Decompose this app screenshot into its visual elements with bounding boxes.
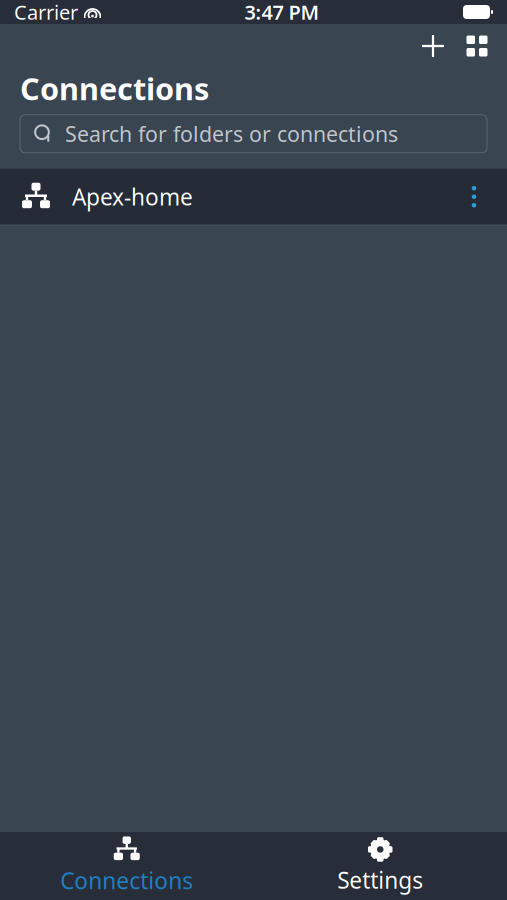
button[interactable]: Connections <box>0 835 253 897</box>
staticText: Apex-home <box>72 182 193 212</box>
staticText: Connections <box>20 68 209 109</box>
button[interactable]: Settings <box>253 835 507 897</box>
button[interactable]: Search for folders or connections <box>20 115 487 153</box>
staticText: 3:47 PM <box>244 0 319 25</box>
staticText: Settings <box>337 865 423 895</box>
button[interactable]: Apex-home <box>0 169 507 225</box>
staticText: Carrier <box>14 0 78 25</box>
button[interactable]: Add connection <box>411 26 455 66</box>
button[interactable]: Grid view <box>455 26 499 66</box>
staticText: Connections <box>60 865 193 895</box>
staticText: Search for folders or connections <box>65 120 398 148</box>
